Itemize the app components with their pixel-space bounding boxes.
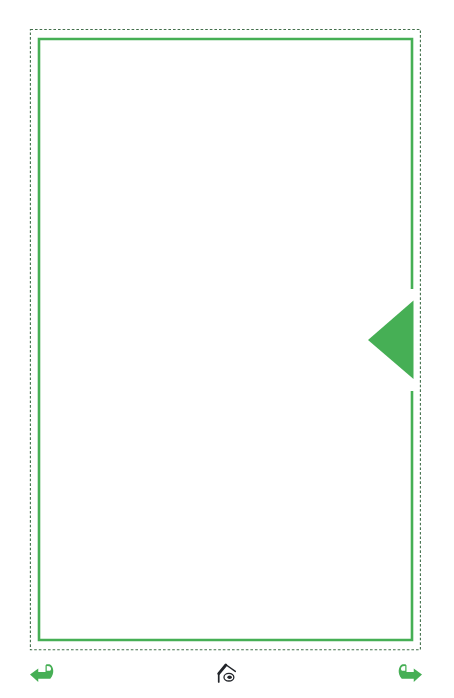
button[interactable]: Forward xyxy=(386,650,432,696)
button[interactable]: Back xyxy=(19,650,65,696)
button[interactable]: Home xyxy=(203,650,249,696)
